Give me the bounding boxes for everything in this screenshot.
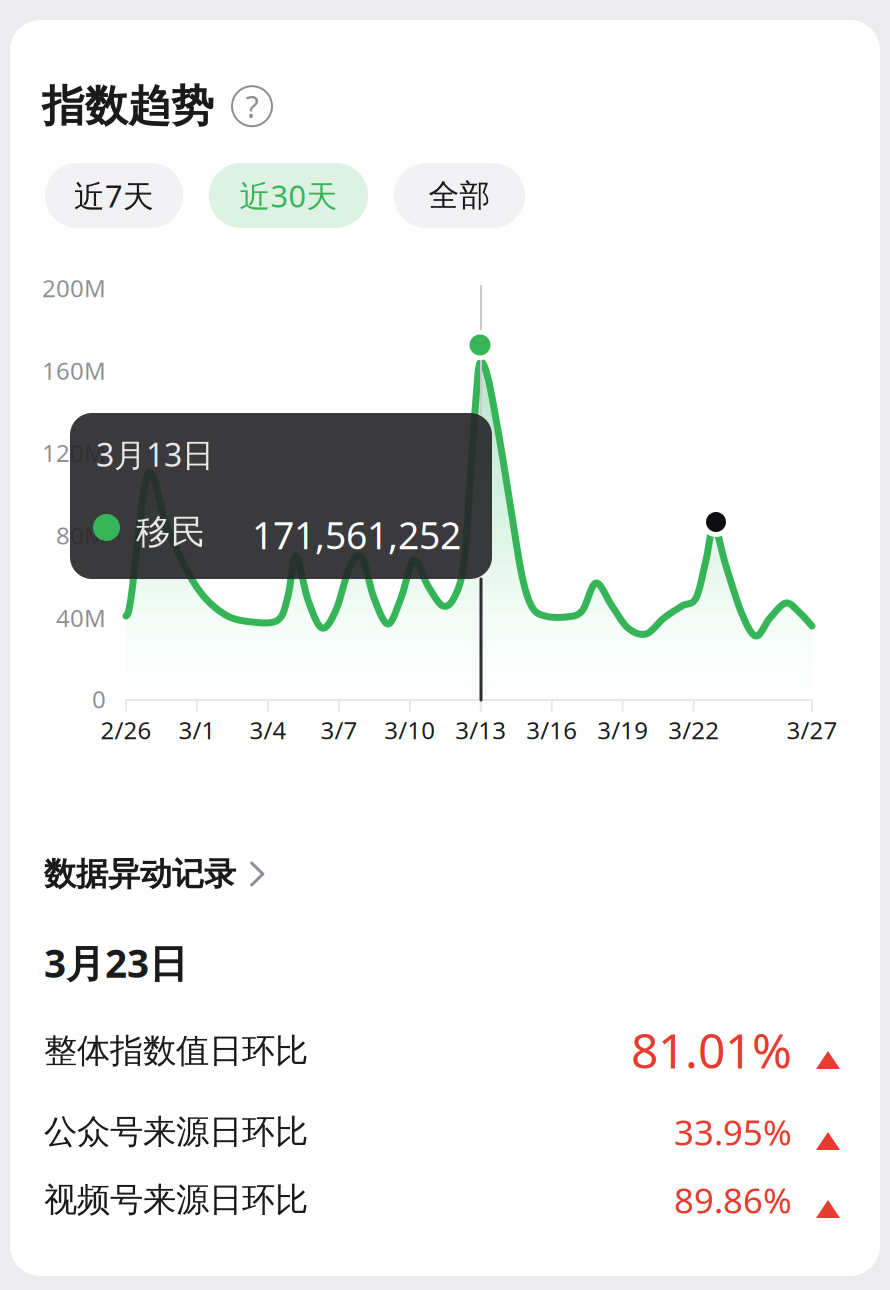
staticText: 3/4 <box>249 714 286 746</box>
staticText: 3月13日 <box>96 433 214 475</box>
staticText: 2/26 <box>100 714 151 746</box>
button[interactable]: 全部 <box>394 163 525 228</box>
staticText: 近30天 <box>239 175 337 216</box>
staticText: 视频号来源日环比 <box>44 1179 308 1220</box>
button[interactable]: 数据异动记录 <box>44 850 344 898</box>
staticText: 200M <box>42 272 106 304</box>
staticText: 3/13 <box>455 714 506 746</box>
staticText: 160M <box>42 354 106 386</box>
button[interactable]: Help <box>232 86 272 126</box>
staticText: 移民 <box>136 511 206 554</box>
staticText: 指数趋势 <box>42 80 214 132</box>
staticText: 3/22 <box>668 714 719 746</box>
staticText: 3/1 <box>178 714 215 746</box>
staticText: 近7天 <box>74 175 154 216</box>
staticText: 89.86% <box>674 1177 792 1223</box>
staticText: 81.01% <box>631 1018 792 1082</box>
staticText: 120M <box>42 437 106 469</box>
staticText: 3/16 <box>526 714 577 746</box>
staticText: 80M <box>56 519 106 551</box>
staticText: 全部 <box>428 177 490 214</box>
staticText: 3/10 <box>384 714 435 746</box>
staticText: 公众号来源日环比 <box>44 1111 308 1152</box>
staticText: 3/27 <box>786 714 837 746</box>
staticText: ? <box>245 86 258 126</box>
staticText: 40M <box>56 602 106 634</box>
staticText: 171,561,252 <box>252 510 461 560</box>
staticText: 整体指数值日环比 <box>44 1030 308 1071</box>
staticText: 3/7 <box>320 714 357 746</box>
staticText: 33.95% <box>674 1109 792 1155</box>
button[interactable]: 近30天 <box>209 163 368 228</box>
staticText: 0 <box>92 683 106 715</box>
staticText: 3/19 <box>597 714 648 746</box>
staticText: 数据异动记录 <box>44 854 236 894</box>
staticText: 3月23日 <box>44 937 188 988</box>
button[interactable]: 近7天 <box>45 163 183 228</box>
